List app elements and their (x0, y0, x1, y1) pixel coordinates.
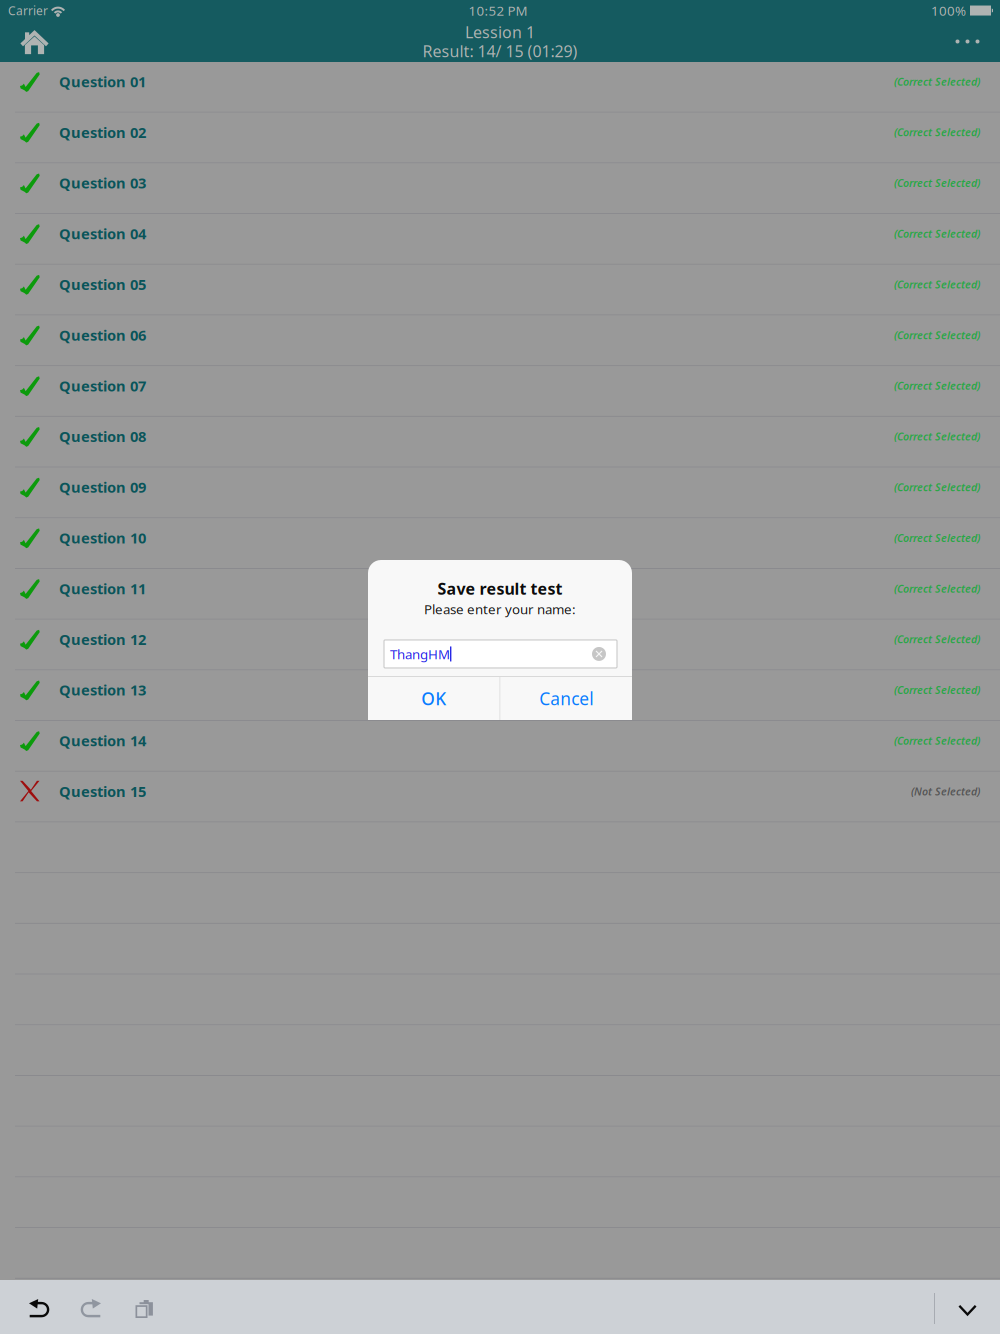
staticText: Question 11 (59, 579, 146, 598)
button[interactable]: Question 10 (0, 518, 1000, 569)
staticText: Question 15 (59, 782, 146, 801)
staticText: Question 07 (59, 376, 146, 395)
button[interactable]: Question 13 (0, 670, 1000, 721)
button[interactable]: Question 15 (0, 772, 1000, 822)
button[interactable]: Question 09 (0, 468, 1000, 518)
button[interactable]: Redo (65, 1280, 116, 1334)
staticText: ThangHM (390, 645, 450, 663)
staticText: Question 05 (59, 275, 146, 294)
staticText: OK (421, 687, 446, 710)
button[interactable]: Question 08 (0, 417, 1000, 468)
staticText: (Correct Selected) (894, 429, 980, 443)
staticText: (Correct Selected) (894, 632, 980, 646)
staticText: Question 09 (59, 477, 146, 497)
button[interactable]: Home (0, 21, 69, 62)
staticText: (Correct Selected) (894, 683, 980, 697)
staticText: Lession 1 (465, 21, 535, 43)
button[interactable]: Question 06 (0, 315, 1000, 366)
button[interactable]: Question 05 (0, 265, 1000, 315)
staticText: Question 10 (59, 528, 146, 548)
button[interactable]: Undo (14, 1280, 65, 1334)
button[interactable]: OK (368, 677, 499, 720)
button[interactable]: Question 14 (0, 721, 1000, 772)
staticText: 100% (931, 2, 966, 19)
staticText: Question 04 (59, 224, 146, 243)
staticText: (Correct Selected) (894, 328, 980, 342)
staticText: (Not Selected) (911, 784, 980, 798)
staticText: (Correct Selected) (894, 531, 980, 545)
button[interactable]: Hide keyboard (935, 1280, 1000, 1334)
button[interactable]: More options (935, 21, 1000, 62)
staticText: (Correct Selected) (894, 125, 980, 139)
staticText: (Correct Selected) (894, 581, 980, 596)
staticText: Carrier (8, 2, 48, 18)
staticText: (Correct Selected) (894, 176, 980, 190)
staticText: (Correct Selected) (894, 733, 980, 748)
staticText: Question 03 (59, 173, 146, 193)
staticText: Cancel (539, 687, 593, 710)
staticText: (Correct Selected) (894, 74, 980, 89)
staticText: Question 12 (59, 629, 146, 649)
button[interactable]: Paste (116, 1280, 167, 1334)
staticText: (Correct Selected) (894, 277, 980, 291)
button[interactable]: Cancel (500, 677, 632, 720)
button[interactable]: Question 12 (0, 620, 1000, 670)
staticText: (Correct Selected) (894, 480, 980, 494)
staticText: Question 02 (59, 122, 146, 142)
staticText: Question 06 (59, 325, 146, 345)
button[interactable]: Question 03 (0, 163, 1000, 214)
button[interactable]: Question 02 (0, 113, 1000, 163)
staticText: Save result test (437, 578, 562, 599)
button[interactable]: Question 11 (0, 569, 1000, 620)
staticText: (Correct Selected) (894, 379, 980, 393)
staticText: Please enter your name: (424, 600, 576, 618)
staticText: Result: 14/ 15 (01:29) (422, 40, 577, 62)
staticText: Question 13 (59, 680, 146, 700)
staticText: Question 01 (59, 72, 146, 91)
button[interactable]: Question 01 (0, 62, 1000, 113)
button[interactable]: Question 07 (0, 366, 1000, 417)
staticText: Question 14 (59, 731, 146, 750)
staticText: 10:52 PM (468, 2, 527, 19)
staticText: Question 08 (59, 427, 146, 446)
button[interactable]: Question 04 (0, 214, 1000, 265)
staticText: (Correct Selected) (894, 226, 980, 241)
